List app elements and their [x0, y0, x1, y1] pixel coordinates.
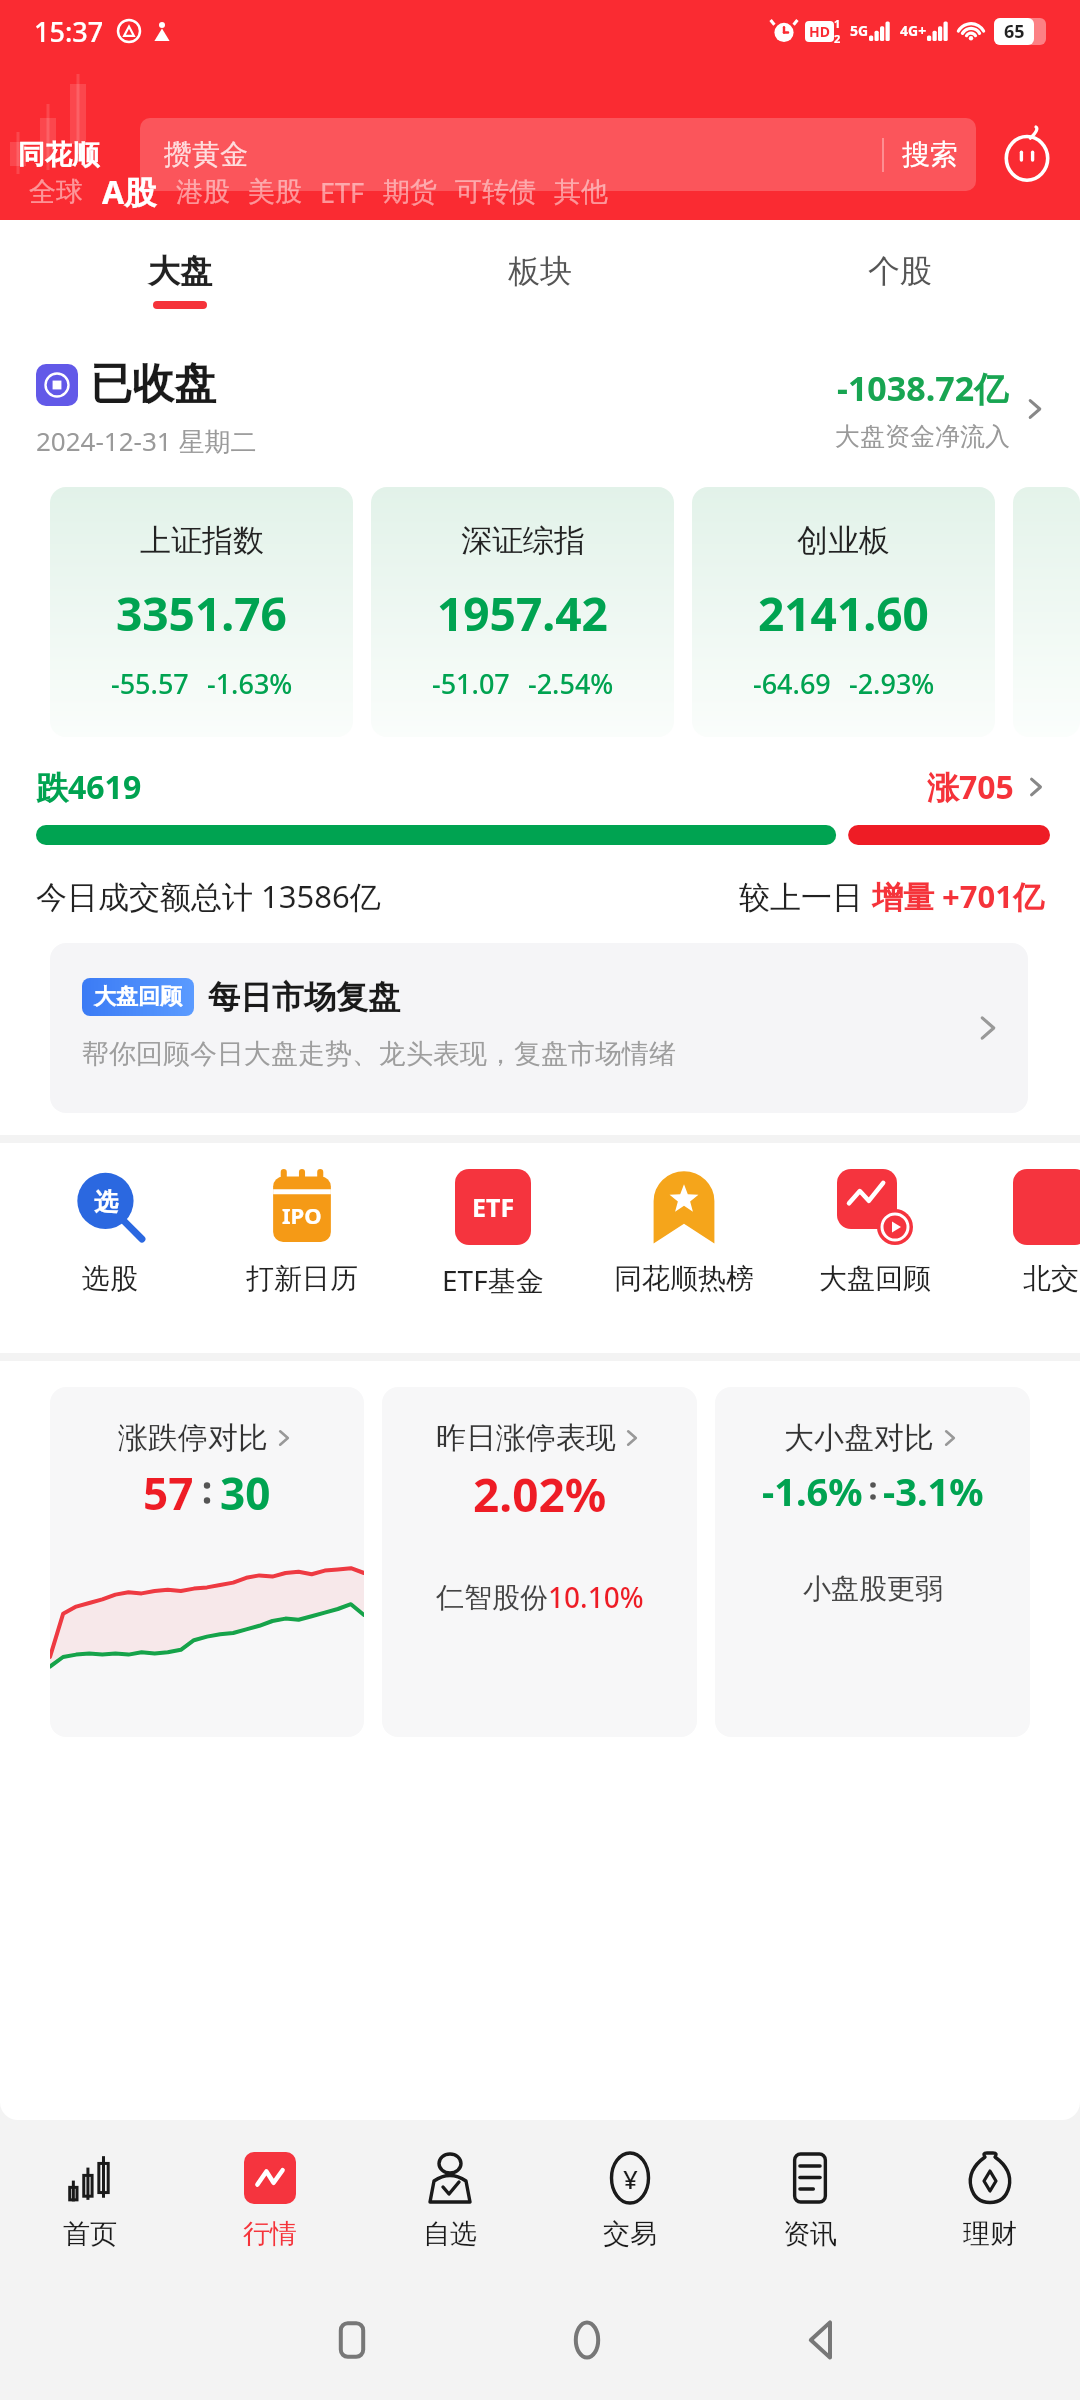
staticText: 3351.76: [116, 582, 287, 645]
staticText: 自选: [423, 2217, 477, 2251]
staticText: 个股: [868, 251, 932, 291]
staticText: -2.93%: [849, 665, 935, 702]
staticText: 帮你回顾今日大盘走势、龙头表现，复盘市场情绪: [82, 1037, 676, 1071]
staticText: 创业板: [797, 521, 890, 560]
button[interactable]: 大盘回顾: [50, 943, 1028, 1113]
staticText: 15:37: [34, 13, 104, 50]
staticText: 2024-12-31 星期二: [36, 423, 257, 459]
button[interactable]: A股: [102, 162, 157, 222]
button[interactable]: 攒黄金: [140, 118, 976, 191]
staticText: 大盘回顾: [94, 983, 182, 1011]
staticText: 涨跌停对比: [118, 1419, 268, 1457]
staticText: 深证综指: [461, 521, 585, 560]
button[interactable]: ¥: [540, 2120, 720, 2280]
button[interactable]: 港股: [176, 162, 230, 222]
staticText: 交易: [603, 2217, 657, 2251]
button[interactable]: 同花顺热榜: [588, 1169, 779, 1296]
staticText: 美股: [248, 175, 302, 209]
button[interactable]: 上证指数: [50, 487, 353, 737]
staticText: 行情: [243, 2217, 297, 2251]
staticText: 其他: [554, 175, 608, 209]
button[interactable]: 首页: [0, 2120, 180, 2280]
button[interactable]: 个股: [720, 220, 1080, 340]
staticText: 板块: [508, 251, 572, 291]
button[interactable]: 可转债: [455, 162, 536, 222]
staticText: ETF: [320, 174, 365, 211]
button[interactable]: 板块: [360, 220, 720, 340]
staticText: 已收盘: [90, 358, 216, 411]
button[interactable]: 昨日涨停表现: [382, 1387, 697, 1737]
staticText: 5G: [850, 21, 869, 40]
button[interactable]: 理财: [900, 2120, 1080, 2280]
staticText: 大盘: [148, 251, 212, 291]
button[interactable]: 跌4619: [36, 765, 1050, 845]
staticText: 攒黄金: [164, 137, 248, 172]
button[interactable]: 行情: [180, 2120, 360, 2280]
staticText: 期货: [383, 175, 437, 209]
button[interactable]: 大盘: [0, 220, 360, 340]
staticText: 选股: [82, 1261, 138, 1296]
staticText: 资讯: [783, 2217, 837, 2251]
button[interactable]: ETF: [397, 1169, 588, 1299]
button[interactable]: 美股: [248, 162, 302, 222]
staticText: 同花顺: [18, 138, 140, 172]
staticText: 大盘回顾: [819, 1261, 931, 1296]
button[interactable]: 其他: [554, 162, 608, 222]
staticText: -1038.72亿: [837, 365, 1009, 411]
button[interactable]: 自选: [360, 2120, 540, 2280]
staticText: 可转债: [455, 175, 536, 209]
staticText: 增量 +701亿: [872, 875, 1044, 917]
staticText: HD: [809, 22, 830, 41]
staticText: 今日成交额总计 13586亿: [36, 875, 381, 917]
staticText: 10.10%: [548, 1578, 644, 1616]
button[interactable]: 选: [14, 1169, 206, 1296]
staticText: ETF: [472, 1190, 515, 1224]
staticText: 上证指数: [140, 521, 264, 560]
button[interactable]: 全球: [29, 162, 83, 222]
staticText: 选: [94, 1187, 118, 1217]
staticText: 2141.60: [758, 582, 929, 645]
staticText: -64.69: [753, 665, 831, 702]
staticText: 北交: [1023, 1261, 1079, 1296]
staticText: 全球: [29, 175, 83, 209]
button[interactable]: Assistant: [996, 124, 1058, 186]
button[interactable]: 北交: [970, 1169, 1080, 1296]
staticText: 65: [1004, 19, 1025, 44]
button[interactable]: 创业板: [692, 487, 995, 737]
staticText: -3.1%: [883, 1465, 984, 1517]
button[interactable]: 深证综指: [371, 487, 674, 737]
staticText: -51.07: [432, 665, 510, 702]
staticText: 4G+: [900, 21, 927, 40]
staticText: 打新日历: [246, 1261, 358, 1296]
staticText: 首页: [63, 2217, 117, 2251]
staticText: 理财: [963, 2217, 1017, 2251]
button[interactable]: 涨跌停对比: [50, 1387, 364, 1737]
staticText: ETF基金: [442, 1261, 544, 1299]
staticText: 仁智股份: [436, 1580, 548, 1615]
staticText: 较上一日: [739, 875, 872, 917]
button[interactable]: ETF: [320, 162, 365, 222]
staticText: 30: [220, 1463, 271, 1523]
staticText: 涨705: [927, 765, 1014, 809]
staticText: 港股: [176, 175, 230, 209]
button[interactable]: -1038.72亿: [835, 365, 1050, 452]
staticText: IPO: [282, 1200, 322, 1230]
button[interactable]: 期货: [383, 162, 437, 222]
staticText: 1: [834, 16, 841, 31]
staticText: A股: [102, 170, 157, 214]
staticText: 大盘资金净流入: [835, 421, 1010, 452]
button[interactable]: 大小盘对比: [715, 1387, 1030, 1737]
staticText: 1957.42: [437, 582, 608, 645]
staticText: 搜索: [902, 137, 958, 172]
staticText: 跌4619: [36, 765, 142, 809]
staticText: 同花顺热榜: [614, 1261, 754, 1296]
staticText: 昨日涨停表现: [436, 1419, 616, 1457]
staticText: -2.54%: [528, 665, 614, 702]
button[interactable]: IPO: [206, 1169, 397, 1296]
button[interactable]: 资讯: [720, 2120, 900, 2280]
staticText: 2.02%: [473, 1463, 607, 1526]
button[interactable]: 大盘回顾: [779, 1169, 970, 1296]
staticText: -55.57: [111, 665, 189, 702]
button[interactable]: [1013, 487, 1080, 737]
staticText: ¥: [623, 2161, 638, 2196]
